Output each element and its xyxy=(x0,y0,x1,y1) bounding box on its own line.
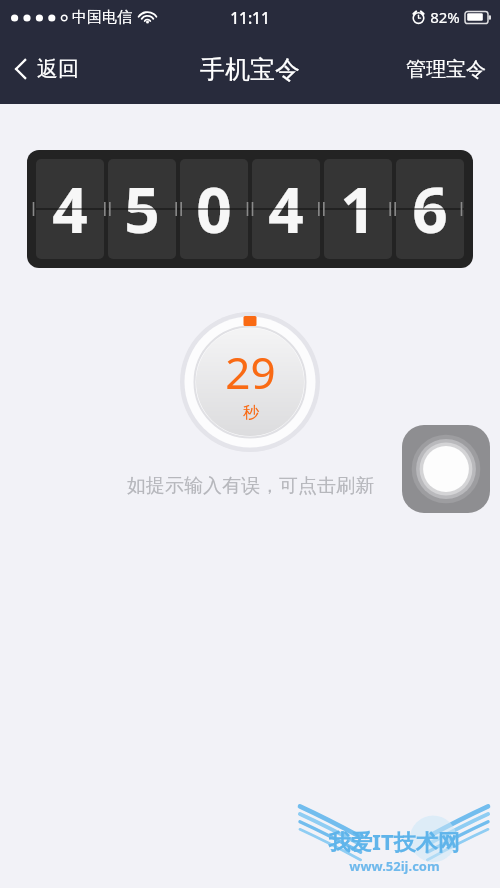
staticText: 29 xyxy=(225,342,276,402)
button[interactable]: AssistiveTouch xyxy=(402,425,490,513)
staticText: 我爱IT技术网 xyxy=(328,826,460,856)
staticText: www.52ij.com xyxy=(349,857,440,875)
staticText: 中国电信 xyxy=(72,8,132,27)
button[interactable]: Refresh code xyxy=(180,312,320,452)
staticText: 5 xyxy=(124,167,160,251)
staticText: 4 xyxy=(52,167,88,251)
button[interactable]: 管理宝令 xyxy=(392,49,500,90)
button[interactable]: 返回 xyxy=(0,48,93,90)
staticText: 11:11 xyxy=(230,7,270,28)
staticText: 秒 xyxy=(243,403,259,423)
staticText: 返回 xyxy=(37,56,79,82)
staticText: 6 xyxy=(412,167,448,251)
staticText: 管理宝令 xyxy=(406,57,486,82)
staticText: 如提示输入有误，可点击刷新 xyxy=(127,474,374,498)
staticText: 0 xyxy=(196,167,232,251)
button[interactable]: 4 xyxy=(27,150,473,268)
staticText: 4 xyxy=(268,167,304,251)
staticText: 82% xyxy=(430,7,460,27)
staticText: 手机宝令 xyxy=(200,54,300,85)
staticText: 1 xyxy=(340,167,376,251)
